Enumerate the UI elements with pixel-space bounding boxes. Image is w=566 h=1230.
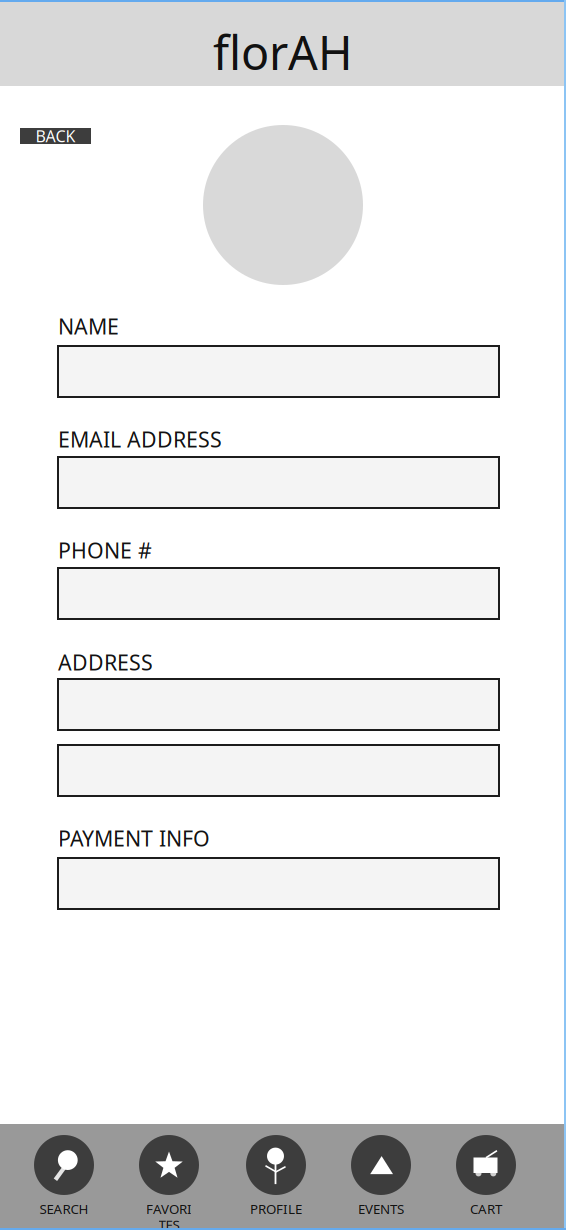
staticText: EVENTS xyxy=(358,1200,404,1218)
staticText: PROFILE xyxy=(250,1200,302,1218)
staticText: BACK xyxy=(35,125,75,147)
button[interactable]: CART xyxy=(450,1135,522,1218)
staticText: ADDRESS xyxy=(58,648,153,676)
button[interactable]: PROFILE xyxy=(240,1135,312,1218)
staticText: TES xyxy=(158,1216,179,1230)
staticText: CART xyxy=(470,1200,502,1218)
staticText: SEARCH xyxy=(39,1200,88,1218)
staticText: PAYMENT INFO xyxy=(58,824,210,852)
button[interactable]: SEARCH xyxy=(28,1135,100,1218)
staticText: florAH xyxy=(213,21,353,83)
staticText: FAVORI xyxy=(146,1200,192,1218)
button[interactable]: BACK xyxy=(20,128,91,144)
staticText: PHONE # xyxy=(58,536,152,564)
button[interactable]: FAVORI xyxy=(133,1135,205,1230)
staticText: NAME xyxy=(58,312,119,340)
button[interactable]: EVENTS xyxy=(345,1135,417,1218)
staticText: EMAIL ADDRESS xyxy=(58,425,222,453)
